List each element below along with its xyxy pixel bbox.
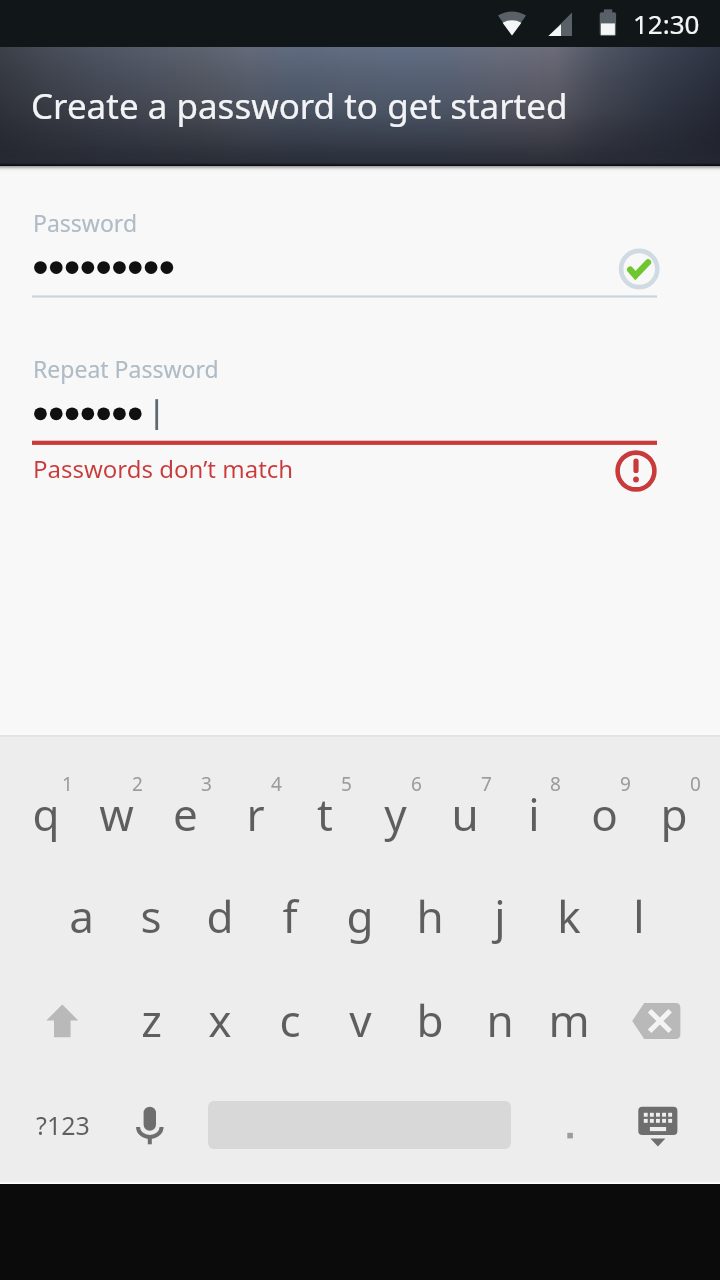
button[interactable]: z bbox=[116, 963, 186, 1064]
button[interactable]: 0 bbox=[639, 753, 709, 854]
button[interactable]: ?123 bbox=[14, 1071, 112, 1172]
staticText: r bbox=[246, 784, 265, 844]
button[interactable]: 9 bbox=[569, 753, 639, 854]
staticText: q bbox=[32, 784, 60, 844]
staticText: 12:30 bbox=[633, 6, 700, 41]
button[interactable]: 2 bbox=[81, 753, 151, 854]
staticText: g bbox=[346, 886, 374, 946]
staticText: f bbox=[282, 886, 298, 946]
staticText: l bbox=[633, 886, 645, 946]
staticText: o bbox=[591, 784, 618, 844]
button[interactable]: Repeat Password bbox=[32, 347, 657, 445]
staticText: 8 bbox=[550, 771, 561, 797]
staticText: c bbox=[279, 990, 301, 1050]
staticText: 9 bbox=[620, 771, 631, 797]
staticText: Passwords don’t match bbox=[33, 452, 294, 485]
staticText: Create a password to get started bbox=[31, 82, 568, 130]
staticText: t bbox=[317, 784, 333, 844]
staticText: v bbox=[349, 990, 372, 1050]
staticText: k bbox=[557, 886, 581, 946]
button[interactable]: a bbox=[46, 859, 116, 960]
button[interactable]: m bbox=[534, 963, 604, 1064]
staticText: a bbox=[69, 886, 94, 946]
button[interactable]: Hide keyboard bbox=[623, 1071, 693, 1172]
staticText: u bbox=[451, 784, 479, 844]
button[interactable]: d bbox=[185, 859, 255, 960]
staticText: p bbox=[660, 784, 688, 844]
button[interactable]: f bbox=[255, 859, 325, 960]
button[interactable]: s bbox=[116, 859, 186, 960]
staticText: y bbox=[384, 784, 407, 844]
staticText: d bbox=[206, 886, 234, 946]
staticText: ?123 bbox=[36, 1108, 90, 1142]
staticText: s bbox=[140, 886, 162, 946]
button[interactable]: Password bbox=[32, 201, 657, 301]
button[interactable]: n bbox=[465, 963, 535, 1064]
button[interactable]: v bbox=[325, 963, 395, 1064]
staticText: 7 bbox=[481, 771, 492, 797]
button[interactable]: 1 bbox=[11, 753, 81, 854]
staticText: j bbox=[494, 886, 506, 946]
button[interactable]: 7 bbox=[430, 753, 500, 854]
staticText: z bbox=[141, 990, 162, 1050]
button[interactable]: Shift bbox=[11, 963, 81, 1064]
staticText: w bbox=[99, 784, 134, 844]
staticText: 6 bbox=[411, 771, 422, 797]
button[interactable]: 3 bbox=[150, 753, 220, 854]
staticText: x bbox=[208, 990, 232, 1050]
button[interactable]: 6 bbox=[360, 753, 430, 854]
button[interactable]: 5 bbox=[290, 753, 360, 854]
staticText: b bbox=[416, 990, 444, 1050]
button[interactable]: Voice input bbox=[118, 1071, 182, 1172]
staticText: n bbox=[486, 990, 514, 1050]
staticText: 0 bbox=[690, 771, 701, 797]
staticText: 4 bbox=[271, 771, 282, 797]
button[interactable]: 8 bbox=[499, 753, 569, 854]
staticText: Password bbox=[33, 207, 138, 238]
button[interactable]: x bbox=[185, 963, 255, 1064]
button[interactable]: Password accepted bbox=[618, 248, 661, 291]
staticText: h bbox=[416, 886, 444, 946]
staticText: i bbox=[528, 784, 540, 844]
button[interactable]: Error: passwords don’t match bbox=[615, 450, 657, 492]
staticText: 3 bbox=[201, 771, 212, 797]
button[interactable]: h bbox=[395, 859, 465, 960]
button[interactable]: 4 bbox=[220, 753, 290, 854]
button[interactable] bbox=[537, 1071, 603, 1172]
staticText: 1 bbox=[62, 771, 73, 797]
staticText: e bbox=[173, 784, 198, 844]
button[interactable]: g bbox=[325, 859, 395, 960]
staticText: 2 bbox=[132, 771, 143, 797]
button[interactable]: l bbox=[604, 859, 674, 960]
button[interactable]: k bbox=[534, 859, 604, 960]
button[interactable]: Backspace bbox=[621, 963, 691, 1064]
button[interactable]: c bbox=[255, 963, 325, 1064]
staticText: Repeat Password bbox=[33, 353, 219, 384]
button[interactable]: Space bbox=[188, 1071, 531, 1172]
staticText: m bbox=[548, 990, 590, 1050]
button[interactable]: b bbox=[395, 963, 465, 1064]
staticText: 5 bbox=[341, 771, 352, 797]
button[interactable]: j bbox=[465, 859, 535, 960]
